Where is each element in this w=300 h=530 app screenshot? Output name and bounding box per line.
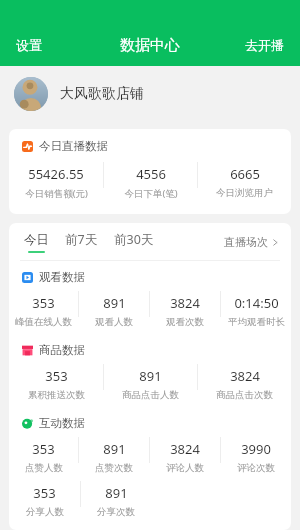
staticText: 商品点击次数 [216, 389, 273, 401]
staticText: 353 [45, 367, 68, 385]
staticText: 891 [103, 294, 126, 312]
staticText: 平均观看时长 [228, 316, 285, 328]
staticText: 6665 [230, 165, 260, 183]
staticText: 互动数据 [39, 416, 85, 430]
staticText: 353 [33, 484, 56, 502]
button[interactable]: 去开播 [233, 31, 296, 59]
staticText: 353 [32, 440, 55, 458]
staticText: 今日销售额(元) [25, 187, 88, 200]
staticText: 点赞人数 [25, 462, 63, 474]
staticText: 观看次数 [166, 316, 204, 328]
staticText: 点赞次数 [95, 462, 133, 474]
staticText: 3824 [170, 294, 200, 312]
staticText: 去开播 [245, 37, 284, 53]
staticText: 55426.55 [28, 165, 84, 183]
staticText: 前7天 [65, 231, 98, 248]
staticText: 今日直播数据 [39, 139, 108, 153]
staticText: 评论人数 [166, 462, 204, 474]
staticText: 今日 [24, 232, 49, 248]
staticText: 4556 [136, 165, 166, 183]
staticText: 353 [32, 294, 55, 312]
button[interactable]: 设置 [4, 31, 54, 59]
button[interactable]: 前30天 [111, 229, 157, 255]
staticText: 分享次数 [97, 506, 135, 518]
staticText: 观看人数 [95, 316, 133, 328]
staticText: 商品数据 [39, 343, 85, 357]
staticText: 3824 [170, 440, 200, 458]
staticText: 评论次数 [237, 462, 275, 474]
staticText: 891 [103, 440, 126, 458]
staticText: 观看数据 [39, 270, 85, 284]
button[interactable]: 前7天 [62, 229, 101, 255]
button[interactable]: 直播场次 [212, 229, 291, 255]
staticText: 前30天 [114, 231, 154, 248]
staticText: 大风歌歌店铺 [60, 85, 144, 103]
staticText: 直播场次 [224, 235, 268, 249]
staticText: 3990 [241, 440, 271, 458]
staticText: 分享人数 [26, 506, 64, 518]
staticText: 891 [105, 484, 128, 502]
staticText: 今日浏览用户 [216, 187, 273, 199]
staticText: 今日下单(笔) [124, 187, 178, 200]
staticText: 设置 [16, 37, 42, 53]
staticText: 数据中心 [120, 36, 180, 55]
staticText: 0:14:50 [234, 294, 279, 312]
button[interactable]: 大风歌歌店铺 [0, 66, 300, 122]
staticText: 3824 [230, 367, 260, 385]
staticText: 891 [139, 367, 162, 385]
button[interactable]: 今日 [21, 230, 52, 255]
staticText: 商品点击人数 [122, 389, 179, 401]
staticText: 累积推送次数 [28, 389, 85, 401]
staticText: 峰值在线人数 [15, 316, 72, 328]
